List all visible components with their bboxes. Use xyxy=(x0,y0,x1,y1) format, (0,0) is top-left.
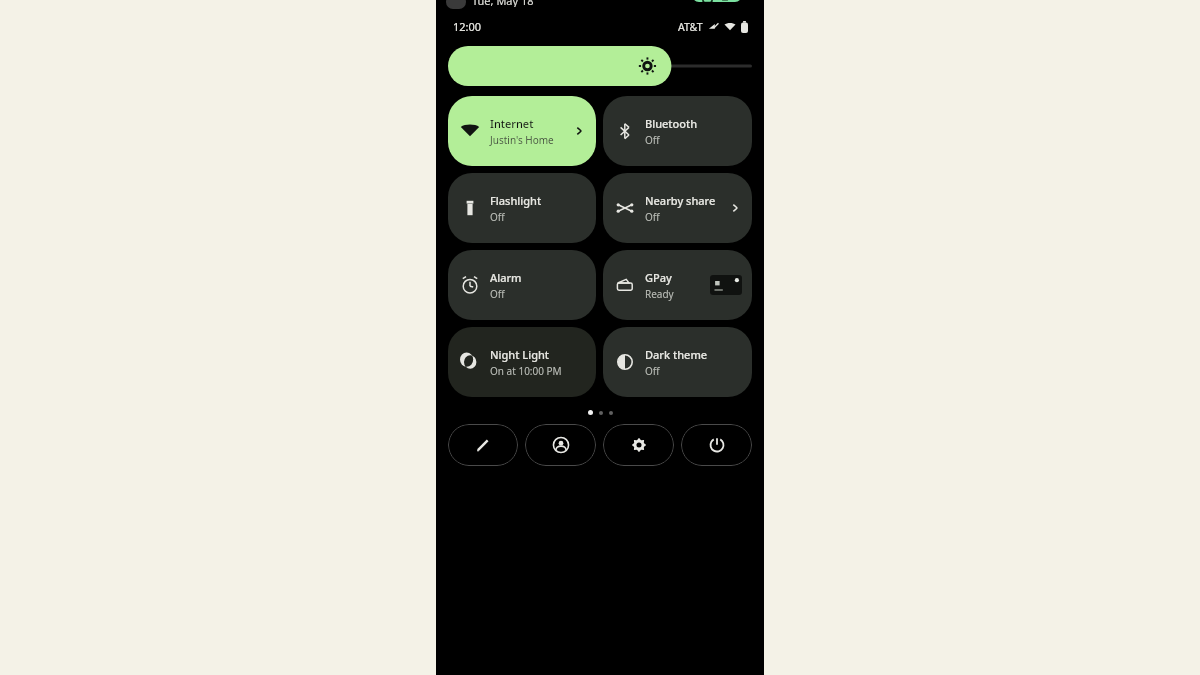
button[interactable]: Power xyxy=(681,424,752,466)
staticText: Off xyxy=(645,210,660,224)
button[interactable]: User xyxy=(525,424,596,466)
button[interactable]: GPay xyxy=(603,250,752,320)
button[interactable]: Internet xyxy=(448,96,596,166)
staticText: Nearby share xyxy=(645,193,716,208)
staticText: GPay xyxy=(645,270,672,285)
button[interactable]: Edit xyxy=(448,424,518,466)
staticText: Off xyxy=(645,133,660,147)
button[interactable]: Brightness xyxy=(448,46,752,86)
staticText: Dark theme xyxy=(645,347,708,362)
staticText: Alarm xyxy=(490,270,522,285)
staticText: 12:00 xyxy=(453,19,482,34)
staticText: AT&T xyxy=(678,20,703,34)
staticText: Night Light xyxy=(490,347,550,362)
button[interactable]: Dark theme xyxy=(603,327,752,397)
staticText: Ready xyxy=(645,287,674,301)
button[interactable]: Nearby share xyxy=(603,173,752,243)
staticText: Off xyxy=(490,287,505,301)
staticText: Internet xyxy=(490,116,534,131)
button[interactable]: Settings xyxy=(603,424,674,466)
staticText: Off xyxy=(490,210,505,224)
staticText: Justin's Home xyxy=(490,133,554,147)
button[interactable]: Night Light xyxy=(448,327,596,397)
button[interactable]: Flashlight xyxy=(448,173,596,243)
button[interactable]: Alarm xyxy=(448,250,596,320)
staticText: Off xyxy=(645,364,660,378)
staticText: Bluetooth xyxy=(645,116,698,131)
staticText: On at 10:00 PM xyxy=(490,364,562,378)
staticText: Tue, May 18 xyxy=(472,0,534,7)
staticText: Flashlight xyxy=(490,193,542,208)
button[interactable]: Bluetooth xyxy=(603,96,752,166)
